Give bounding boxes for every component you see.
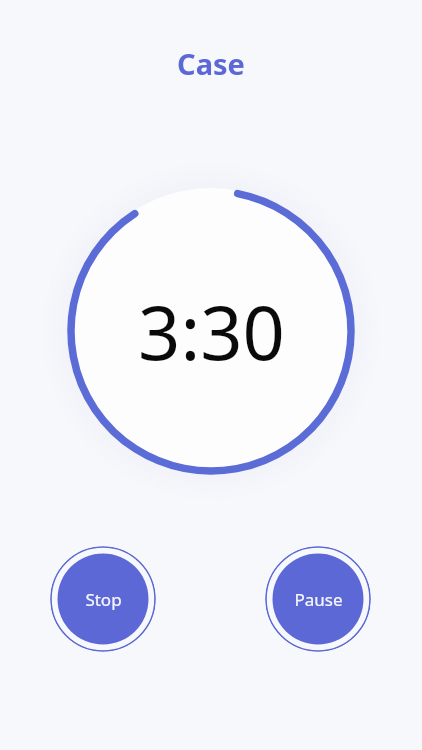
button[interactable]: Pause [265,546,371,652]
staticText: Pause [294,588,343,611]
staticText: 3:30 [138,281,285,382]
staticText: Stop [85,588,122,611]
button[interactable]: Stop [50,546,156,652]
staticText: Case [0,44,422,750]
